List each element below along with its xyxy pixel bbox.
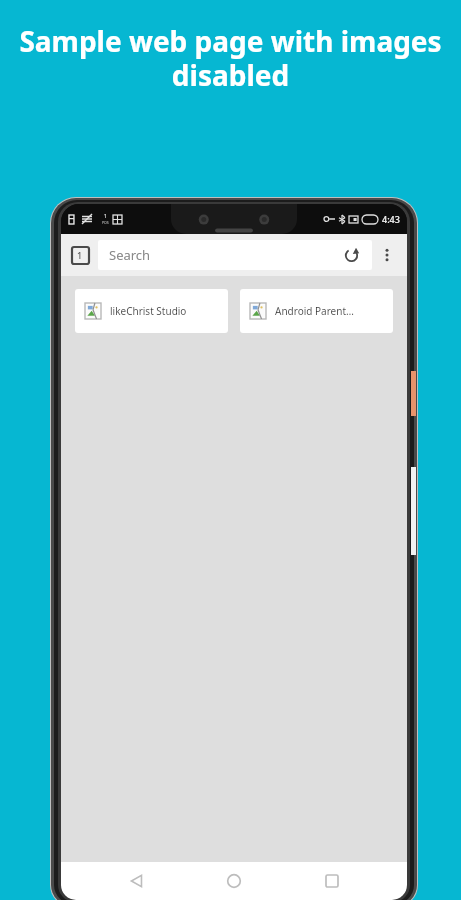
staticText: Sample web page with images disabled — [16, 22, 445, 94]
button[interactable]: Back — [115, 862, 159, 900]
staticText: POS — [102, 220, 109, 225]
staticText: likeChrist Studio — [110, 304, 187, 318]
staticText: 4:43 — [382, 213, 400, 225]
button[interactable]: likeChrist Studio — [75, 289, 228, 333]
button[interactable]: Tabs — [68, 243, 92, 267]
staticText: 1 — [77, 249, 83, 261]
button[interactable]: Search — [98, 240, 372, 270]
button[interactable]: Recent apps — [310, 862, 354, 900]
button[interactable]: Home — [212, 862, 256, 900]
staticText: Search — [109, 246, 151, 264]
button[interactable]: Reload — [341, 245, 361, 265]
button[interactable]: Android Parent… — [240, 289, 393, 333]
staticText: 1 — [104, 213, 107, 220]
button[interactable]: More options — [374, 242, 400, 268]
staticText: Android Parent… — [275, 304, 354, 318]
